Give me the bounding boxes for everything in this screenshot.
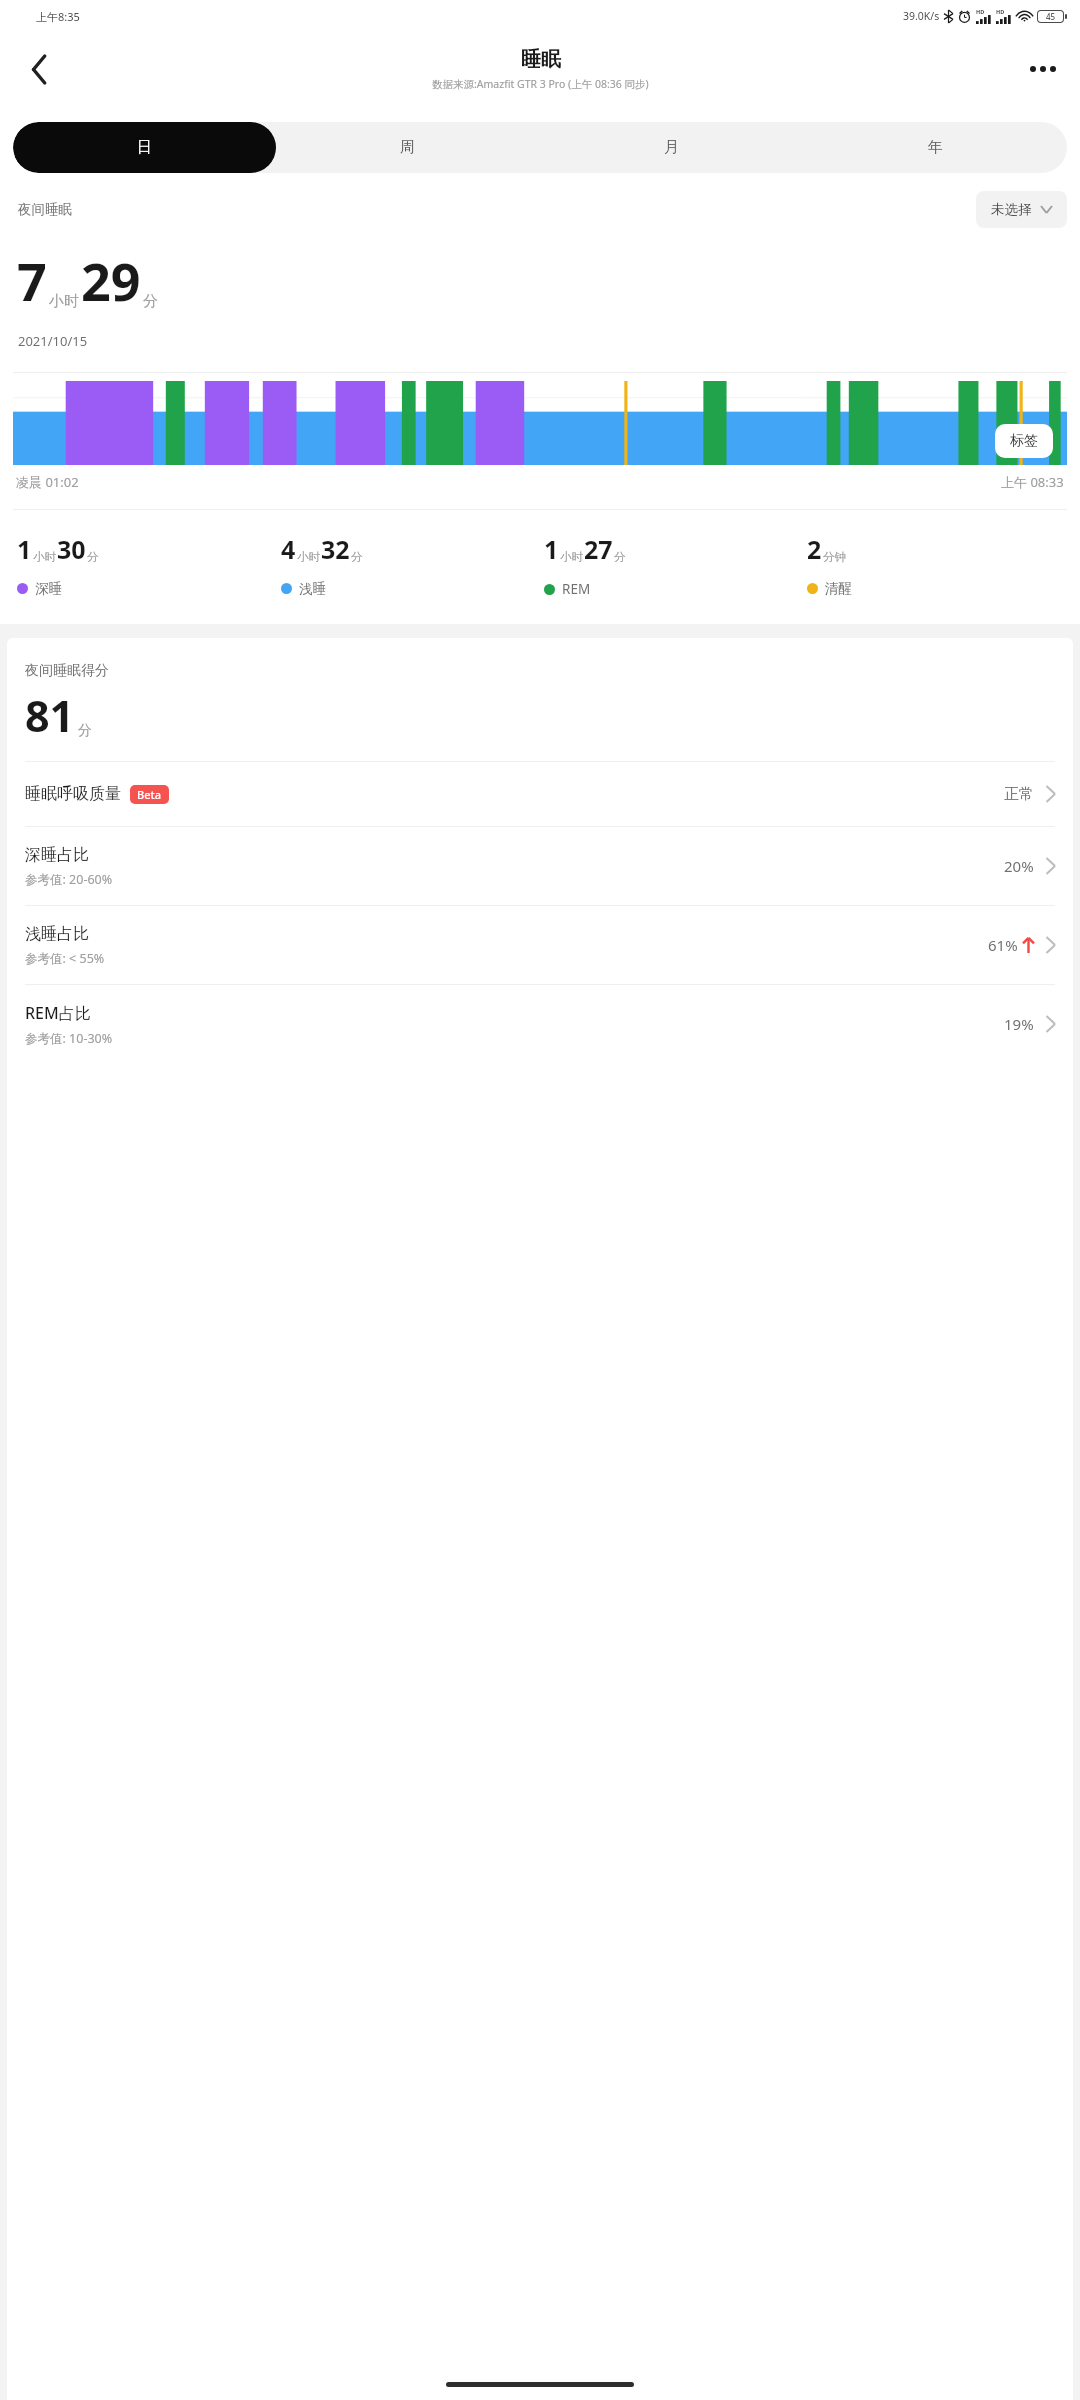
staticText: 清醒 [825, 580, 852, 597]
staticText: 分 [78, 722, 92, 740]
button[interactable]: 深睡占比 [25, 827, 1055, 905]
staticText: 参考值: 20-60% [25, 871, 113, 888]
staticText: 小时 [297, 550, 320, 564]
staticText: 正常 [1004, 785, 1034, 804]
staticText: 浅睡 [299, 580, 326, 597]
staticText: 32 [321, 532, 350, 566]
button[interactable]: 浅睡占比 [25, 906, 1055, 984]
staticText: 61% [988, 935, 1018, 955]
staticText: 29 [81, 245, 141, 316]
staticText: 分 [87, 550, 99, 564]
staticText: REM [562, 580, 591, 598]
staticText: 分 [351, 550, 363, 564]
staticText: 凌晨 01:02 [16, 473, 79, 491]
button[interactable]: 年 [803, 122, 1067, 173]
staticText: 45 [1046, 11, 1056, 22]
staticText: 7 [17, 245, 47, 316]
staticText: 睡眠 [521, 47, 561, 72]
staticText: 日 [137, 138, 152, 157]
staticText: 小时 [33, 550, 56, 564]
button[interactable]: 日 [13, 122, 276, 173]
staticText: 1 [17, 532, 32, 566]
staticText: 小时 [560, 550, 583, 564]
staticText: 2021/10/15 [18, 332, 88, 350]
button[interactable]: Back [14, 44, 64, 94]
staticText: 分钟 [823, 550, 846, 564]
button[interactable]: 标签 [995, 424, 1053, 458]
staticText: 20% [1004, 856, 1034, 876]
staticText: 4 [281, 532, 296, 566]
staticText: 1 [544, 532, 559, 566]
staticText: 上午 08:33 [1001, 473, 1064, 491]
staticText: 参考值: 10-30% [25, 1030, 113, 1047]
button[interactable]: More options [1018, 44, 1068, 94]
staticText: 19% [1004, 1014, 1034, 1034]
staticText: 27 [584, 532, 613, 566]
button[interactable]: REM占比 [25, 985, 1055, 1063]
staticText: 睡眠呼吸质量 [25, 784, 121, 804]
button[interactable]: 周 [276, 122, 539, 173]
staticText: 参考值: < 55% [25, 950, 105, 967]
staticText: 81 [25, 686, 75, 745]
staticText: Beta [137, 787, 162, 802]
staticText: 未选择 [991, 201, 1032, 218]
staticText: 2 [807, 532, 822, 566]
staticText: REM占比 [25, 1002, 91, 1024]
staticText: 小时 [49, 292, 79, 311]
staticText: 上午8:35 [36, 9, 80, 24]
staticText: 周 [400, 138, 415, 157]
staticText: 深睡 [35, 580, 62, 597]
staticText: 月 [664, 138, 679, 157]
button[interactable]: 睡眠呼吸质量 [25, 762, 1055, 826]
staticText: HD [976, 8, 985, 15]
staticText: 年 [928, 138, 943, 157]
staticText: 夜间睡眠 [18, 201, 72, 218]
staticText: 分 [143, 292, 158, 311]
staticText: 分 [614, 550, 626, 564]
button[interactable]: 未选择 [976, 191, 1067, 228]
staticText: 浅睡占比 [25, 924, 89, 944]
staticText: 标签 [1010, 432, 1038, 450]
staticText: 30 [57, 532, 86, 566]
button[interactable]: 月 [539, 122, 803, 173]
staticText: 夜间睡眠得分 [25, 662, 109, 680]
staticText: 39.0K/s [903, 9, 940, 23]
staticText: 数据来源:Amazfit GTR 3 Pro (上午 08:36 同步) [432, 77, 649, 91]
staticText: 深睡占比 [25, 845, 89, 865]
staticText: HD [996, 8, 1005, 15]
